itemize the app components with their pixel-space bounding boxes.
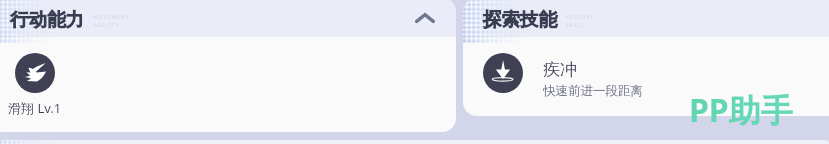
staticText: MOVEMENT: [93, 14, 130, 21]
staticText: 疾冲: [543, 59, 577, 80]
staticText: SKILL: [566, 22, 585, 29]
staticText: EXPLORE: [566, 14, 595, 21]
button[interactable]: 探索技能: [463, 0, 829, 37]
staticText: 快速前进一段距离: [543, 83, 643, 99]
button[interactable]: 疾冲: [463, 33, 829, 112]
button[interactable]: 滑翔 Lv.1: [15, 53, 55, 93]
staticText: 行动能力: [10, 8, 84, 31]
staticText: PP助手: [689, 88, 793, 132]
staticText: 滑翔 Lv.1: [8, 99, 62, 117]
button[interactable]: 行动能力: [0, 0, 456, 37]
button[interactable]: 收起: [405, 0, 445, 37]
staticText: 探索技能: [483, 8, 557, 31]
staticText: ABILITY: [93, 22, 119, 29]
